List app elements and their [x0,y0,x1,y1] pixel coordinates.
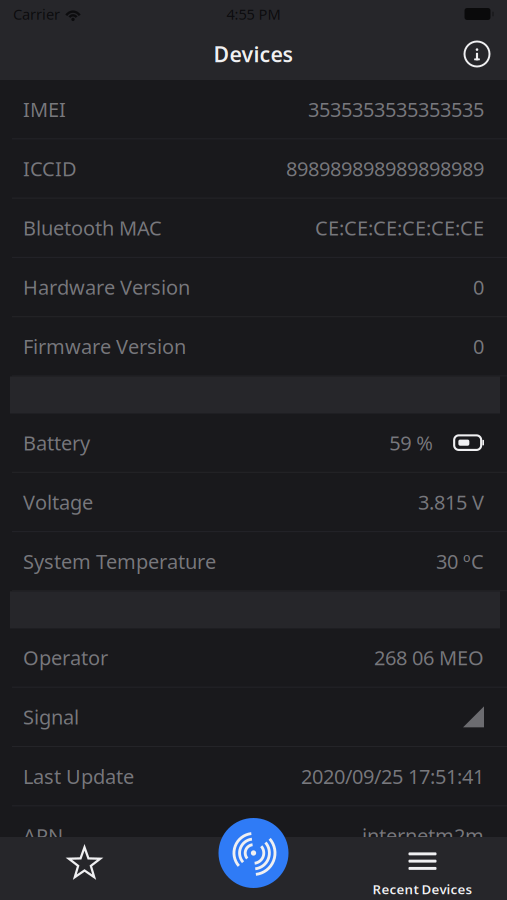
button[interactable]: Signal [0,688,507,747]
staticText: 2020/09/25 17:51:41 [301,763,484,789]
button[interactable]: Bluetooth MAC [0,199,507,258]
button[interactable]: Recent Devices [338,837,507,900]
button[interactable]: Scan [169,837,338,900]
button[interactable]: Last Update [0,747,507,806]
staticText: 30 ºC [436,548,484,575]
staticText: internetm2m [362,822,484,849]
staticText: 0 [473,274,484,300]
button[interactable]: Voltage [0,473,507,532]
staticText: Operator [23,644,108,671]
button[interactable]: Battery [0,413,507,473]
staticText: 4:55 PM [226,4,280,24]
staticText: Voltage [23,489,93,515]
button[interactable]: System Temperature [0,532,507,591]
staticText: 59 % [389,429,433,456]
button[interactable]: Operator [0,628,507,688]
staticText: ICCID [23,155,77,182]
staticText: IMEI [23,96,66,122]
staticText: System Temperature [23,548,216,575]
staticText: APN [23,822,63,849]
button[interactable]: ICCID [0,139,507,199]
staticText: 268 06 MEO [374,644,484,671]
staticText: Last Update [23,763,134,789]
button[interactable]: Roaming [0,866,507,900]
staticText: Recent Devices [372,880,472,898]
button[interactable]: Favourites [0,837,169,900]
staticText: Bluetooth MAC [23,214,162,241]
staticText: Devices [213,40,293,68]
staticText: Hardware Version [23,274,190,300]
staticText: 3535353535353535 [308,96,484,122]
staticText: No [457,881,484,900]
button[interactable]: Scan device [218,818,288,888]
staticText: CE:CE:CE:CE:CE:CE [315,214,484,241]
staticText: 0 [473,333,484,360]
button[interactable]: Hardware Version [0,258,507,317]
button[interactable]: Info [453,32,507,76]
staticText: Battery [23,429,90,456]
button[interactable]: APN [0,806,507,866]
staticText: Carrier [13,4,60,24]
button[interactable]: IMEI [0,80,507,139]
staticText: Firmware Version [23,333,186,360]
button[interactable]: Firmware Version [0,317,507,376]
staticText: 3.815 V [418,489,484,515]
staticText: 898989898989898989 [286,155,484,182]
staticText: Signal [23,704,79,730]
